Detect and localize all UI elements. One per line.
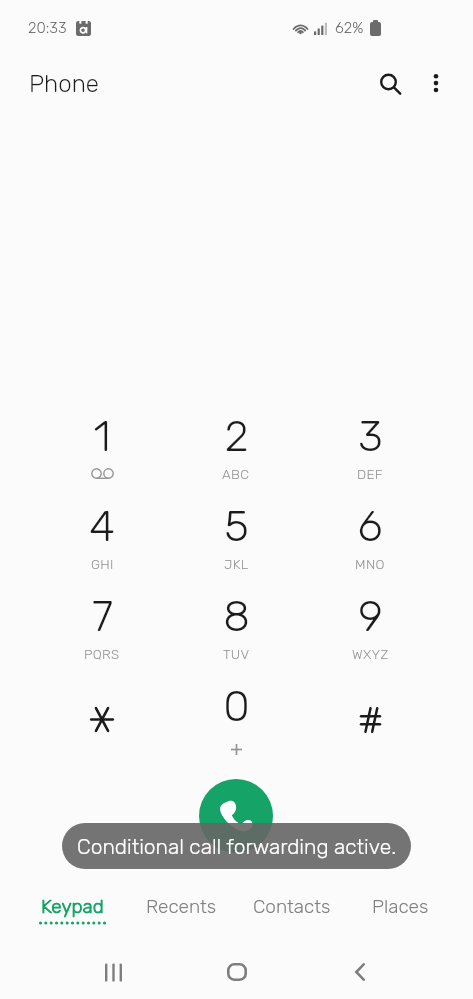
button[interactable]: 3 (315, 401, 425, 489)
staticText: Keypad (41, 895, 104, 918)
staticText: JKL (224, 556, 249, 572)
staticText: GHI (91, 556, 114, 572)
button[interactable]: Keypad (18, 885, 127, 939)
staticText: ABC (222, 466, 250, 482)
staticText: 3 (358, 411, 383, 462)
button[interactable]: Recents (127, 885, 236, 939)
staticText: 9 (358, 591, 383, 642)
staticText: 7 (92, 591, 113, 642)
staticText: 2 (224, 411, 249, 462)
button[interactable]: 1 (47, 401, 157, 489)
button[interactable]: 0 (181, 671, 291, 759)
button[interactable]: 2 (181, 401, 291, 489)
button[interactable]: 7 (47, 581, 157, 669)
button[interactable]: More options (414, 61, 458, 105)
staticText: 5 (224, 501, 249, 552)
staticText: 20:33 (28, 19, 67, 37)
staticText: WXYZ (352, 646, 389, 662)
staticText: Phone (29, 70, 99, 98)
staticText: TUV (223, 646, 250, 662)
staticText: 0 (223, 681, 250, 732)
staticText: MNO (355, 556, 385, 572)
staticText: Recents (146, 895, 217, 918)
button[interactable]: 4 (47, 491, 157, 579)
staticText: 62% (335, 19, 364, 37)
staticText: Places (372, 895, 429, 918)
button[interactable] (315, 671, 425, 759)
button[interactable]: Search (371, 64, 415, 108)
button[interactable]: 9 (315, 581, 425, 669)
button[interactable]: Places (346, 885, 455, 939)
button[interactable] (47, 671, 157, 759)
staticText: Contacts (253, 895, 331, 918)
button[interactable]: 6 (315, 491, 425, 579)
button[interactable]: Call (199, 779, 273, 853)
button[interactable]: Recent apps (86, 945, 140, 999)
staticText: DEF (357, 466, 383, 482)
button[interactable]: Contacts (237, 885, 346, 939)
staticText: 4 (89, 501, 115, 552)
staticText: 8 (223, 591, 250, 642)
button[interactable]: Back (333, 945, 387, 999)
staticText: 6 (357, 501, 383, 552)
staticText: PQRS (84, 646, 120, 662)
staticText: Conditional call forwarding active. (77, 834, 397, 859)
button[interactable]: 5 (181, 491, 291, 579)
button[interactable]: Home (210, 945, 264, 999)
button[interactable]: 8 (181, 581, 291, 669)
staticText: 1 (93, 411, 111, 462)
